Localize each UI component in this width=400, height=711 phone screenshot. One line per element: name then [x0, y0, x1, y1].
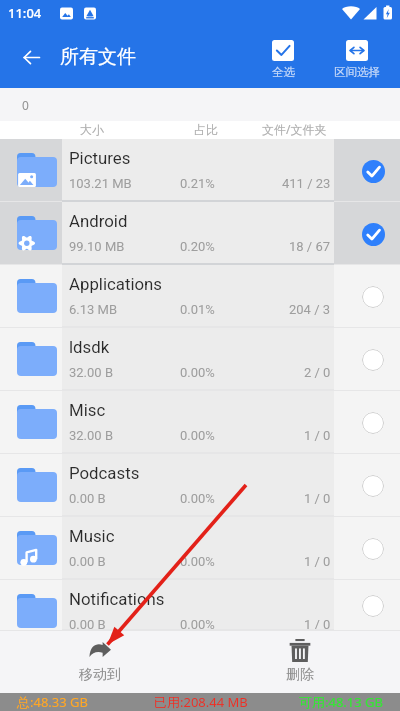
staticText: 0.00% [180, 554, 215, 569]
button[interactable]: Notifications [0, 580, 400, 631]
staticText: 0.00% [180, 491, 215, 506]
button[interactable]: Select [361, 474, 385, 498]
staticText: 文件/文件夹 [262, 121, 327, 137]
staticText: 1 / 0 [304, 491, 331, 506]
staticText: Android [69, 211, 128, 231]
staticText: Applications [69, 274, 163, 294]
staticText: Misc [69, 400, 106, 420]
staticText: 总:48.33 GB [17, 693, 89, 711]
staticText: 大小 [80, 122, 104, 137]
staticText: 0.00 B [69, 491, 106, 506]
staticText: 411 / 23 [282, 176, 331, 191]
button[interactable]: Select [361, 411, 385, 435]
staticText: 0.01% [180, 302, 215, 317]
staticText: 1 / 0 [304, 428, 331, 443]
button[interactable]: Misc [0, 391, 400, 454]
staticText: Pictures [69, 148, 131, 168]
staticText: 区间选择 [334, 65, 380, 79]
staticText: ldsdk [69, 337, 110, 357]
button[interactable]: 移动到 [0, 631, 200, 693]
button[interactable]: Music [0, 517, 400, 580]
staticText: 11:04 [8, 4, 42, 22]
staticText: 18 / 67 [289, 239, 331, 254]
staticText: 0 [22, 97, 29, 113]
button[interactable]: Select [361, 285, 385, 309]
button[interactable]: Selected [361, 159, 385, 183]
staticText: Podcasts [69, 463, 140, 483]
button[interactable]: Back [13, 39, 49, 75]
staticText: 删除 [286, 666, 314, 684]
staticText: 2 / 0 [304, 365, 331, 380]
button[interactable]: Podcasts [0, 454, 400, 517]
staticText: 0.00% [180, 617, 215, 631]
staticText: 1 / 0 [304, 554, 331, 569]
staticText: 0.00% [180, 428, 215, 443]
staticText: 0.00 B [69, 617, 106, 631]
staticText: 0.00 B [69, 554, 106, 569]
staticText: 0.21% [180, 176, 215, 191]
staticText: 所有文件 [60, 45, 136, 69]
staticText: 1 / 0 [304, 617, 331, 631]
staticText: 6.13 MB [69, 302, 118, 317]
button[interactable]: Select [361, 348, 385, 372]
staticText: 已用:208.44 MB [154, 693, 248, 711]
button[interactable]: Select [361, 537, 385, 561]
staticText: 全选 [272, 65, 295, 79]
button[interactable]: 删除 [200, 631, 400, 693]
button[interactable]: Select [361, 594, 385, 618]
button[interactable]: Android [0, 202, 400, 265]
staticText: 移动到 [79, 666, 121, 684]
button[interactable]: ldsdk [0, 328, 400, 391]
staticText: 103.21 MB [69, 176, 132, 191]
staticText: Notifications [69, 589, 165, 609]
button[interactable]: Applications [0, 265, 400, 328]
staticText: 32.00 B [69, 428, 113, 443]
button[interactable]: 全选 [256, 26, 310, 88]
button[interactable]: Selected [361, 222, 385, 246]
staticText: 0.20% [180, 239, 215, 254]
staticText: 204 / 3 [289, 302, 331, 317]
staticText: 0.00% [180, 365, 215, 380]
staticText: 可用:48.13 GB [299, 693, 384, 711]
staticText: 32.00 B [69, 365, 113, 380]
staticText: 占比 [194, 122, 218, 137]
staticText: 99.10 MB [69, 239, 125, 254]
button[interactable]: Pictures [0, 139, 400, 202]
staticText: Music [69, 526, 115, 546]
button[interactable]: 区间选择 [330, 26, 384, 88]
